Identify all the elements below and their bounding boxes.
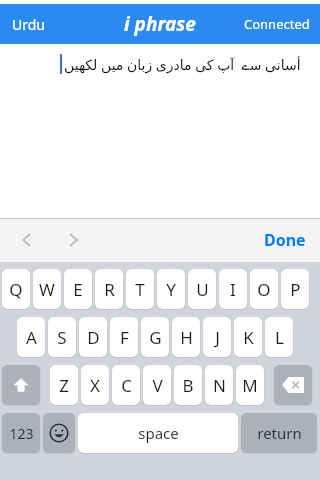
button[interactable]: V bbox=[143, 365, 171, 405]
staticText: Q bbox=[9, 278, 23, 301]
button[interactable]: E bbox=[64, 269, 92, 309]
staticText: space bbox=[138, 423, 179, 443]
button[interactable]: O bbox=[250, 269, 278, 309]
staticText: U bbox=[196, 278, 209, 301]
button[interactable]: return bbox=[241, 413, 317, 453]
staticText: T bbox=[135, 278, 145, 301]
button[interactable]: Previous bbox=[10, 223, 44, 257]
button[interactable]: Q bbox=[2, 269, 30, 309]
button[interactable]: Z bbox=[50, 365, 78, 405]
button[interactable]: Next bbox=[56, 223, 90, 257]
staticText: Connected bbox=[244, 15, 310, 33]
staticText: C bbox=[121, 374, 132, 397]
button[interactable]: Done bbox=[258, 223, 312, 257]
button[interactable]: R bbox=[95, 269, 123, 309]
button[interactable]: X bbox=[81, 365, 109, 405]
staticText: I bbox=[230, 278, 236, 301]
button[interactable]: D bbox=[79, 317, 107, 357]
button[interactable]: S bbox=[48, 317, 76, 357]
button[interactable]: J bbox=[203, 317, 231, 357]
button[interactable]: U bbox=[188, 269, 216, 309]
button[interactable]: 123 bbox=[2, 413, 40, 453]
staticText: i phrase bbox=[124, 11, 196, 37]
staticText: X bbox=[90, 374, 100, 397]
staticText: أسانی سے آپ کی مادری زبان میں لکھیں bbox=[64, 55, 301, 74]
button[interactable]: M bbox=[236, 365, 264, 405]
staticText: Z bbox=[59, 374, 69, 397]
button[interactable]: I bbox=[219, 269, 247, 309]
staticText: W bbox=[39, 278, 55, 301]
staticText: M bbox=[242, 374, 258, 397]
button[interactable]: L bbox=[265, 317, 293, 357]
staticText: A bbox=[26, 326, 37, 349]
button[interactable]: H bbox=[172, 317, 200, 357]
button[interactable]: G bbox=[141, 317, 169, 357]
staticText: O bbox=[257, 278, 271, 301]
button[interactable]: W bbox=[33, 269, 61, 309]
button[interactable]: Backspace bbox=[274, 365, 312, 405]
button[interactable]: Emoji bbox=[43, 413, 75, 453]
button[interactable]: T bbox=[126, 269, 154, 309]
button[interactable]: Urdu bbox=[4, 9, 53, 40]
button[interactable]: K bbox=[234, 317, 262, 357]
staticText: H bbox=[180, 326, 193, 349]
button[interactable]: Connected bbox=[238, 9, 316, 39]
staticText: L bbox=[275, 326, 284, 349]
staticText: V bbox=[152, 374, 163, 397]
staticText: Urdu bbox=[12, 15, 45, 34]
staticText: D bbox=[87, 326, 100, 349]
button[interactable]: Shift bbox=[2, 365, 40, 405]
staticText: F bbox=[120, 326, 129, 349]
staticText: E bbox=[73, 278, 83, 301]
staticText: P bbox=[290, 278, 301, 301]
button[interactable]: C bbox=[112, 365, 140, 405]
button[interactable]: space bbox=[78, 413, 238, 453]
staticText: S bbox=[57, 326, 67, 349]
button[interactable]: N bbox=[205, 365, 233, 405]
staticText: R bbox=[104, 278, 115, 301]
staticText: return bbox=[257, 423, 302, 443]
staticText: J bbox=[215, 326, 220, 349]
button[interactable]: A bbox=[17, 317, 45, 357]
staticText: 123 bbox=[9, 424, 34, 443]
button[interactable]: أسانی سے آپ کی مادری زبان میں لکھیں bbox=[0, 44, 320, 218]
staticText: B bbox=[182, 374, 194, 397]
staticText: Y bbox=[166, 278, 176, 301]
staticText: K bbox=[243, 326, 254, 349]
button[interactable]: P bbox=[281, 269, 309, 309]
button[interactable]: B bbox=[174, 365, 202, 405]
staticText: N bbox=[213, 374, 226, 397]
button[interactable]: Y bbox=[157, 269, 185, 309]
button[interactable]: F bbox=[110, 317, 138, 357]
staticText: G bbox=[149, 326, 162, 349]
staticText: Done bbox=[264, 229, 306, 251]
